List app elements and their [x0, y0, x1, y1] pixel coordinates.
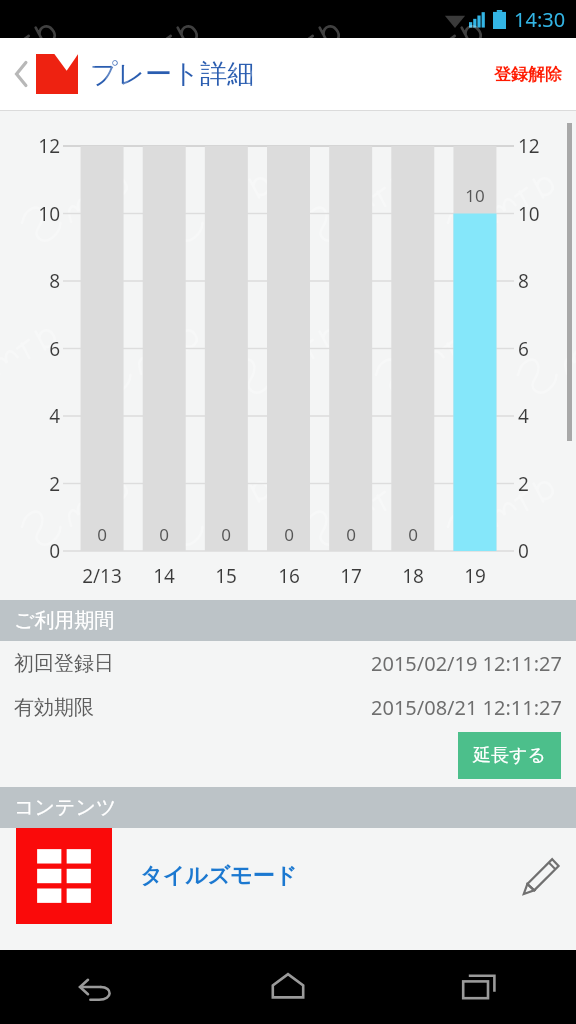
staticText: 2/13 [82, 563, 122, 589]
button[interactable]: Home [192, 950, 384, 1024]
staticText: 17 [340, 563, 362, 589]
button[interactable]: タイルズモード [0, 828, 576, 924]
staticText: 0 [159, 523, 169, 546]
staticText: 2015/08/21 12:11:27 [371, 694, 562, 721]
button[interactable]: Recents [384, 950, 576, 1024]
staticText: ご利用期間 [14, 608, 115, 633]
staticText: 4 [49, 403, 60, 429]
staticText: 0 [97, 523, 107, 546]
staticText: コンテンツ [14, 795, 117, 820]
staticText: 0 [346, 523, 356, 546]
staticText: 15 [215, 563, 237, 589]
staticText: 0 [518, 538, 529, 564]
staticText: プレート詳細 [90, 57, 254, 91]
staticText: 6 [518, 336, 529, 362]
staticText: 延長する [473, 744, 546, 767]
staticText: 14 [153, 563, 175, 589]
staticText: 4 [518, 403, 529, 429]
staticText: 2 [518, 471, 529, 497]
button[interactable]: 登録解除 [488, 54, 568, 95]
button[interactable]: Back [0, 950, 192, 1024]
staticText: 10 [38, 201, 60, 227]
staticText: 0 [49, 538, 60, 564]
button[interactable]: Back [8, 52, 34, 96]
button[interactable]: 延長する [458, 732, 561, 779]
staticText: 有効期限 [14, 695, 94, 720]
staticText: 0 [221, 523, 231, 546]
staticText: 0 [408, 523, 418, 546]
staticText: 2015/02/19 12:11:27 [371, 650, 562, 677]
staticText: 10 [465, 184, 485, 207]
button[interactable]: Edit [512, 847, 570, 905]
staticText: 16 [278, 563, 300, 589]
staticText: 12 [38, 133, 60, 159]
staticText: 登録解除 [494, 64, 562, 85]
staticText: 0 [284, 523, 294, 546]
staticText: 12 [518, 133, 540, 159]
staticText: 6 [49, 336, 60, 362]
staticText: 初回登録日 [14, 651, 114, 676]
staticText: 14:30 [514, 6, 566, 33]
staticText: 18 [402, 563, 424, 589]
staticText: 10 [518, 201, 540, 227]
staticText: 19 [464, 563, 486, 589]
staticText: タイルズモード [140, 862, 298, 890]
staticText: 8 [49, 268, 60, 294]
staticText: 8 [518, 268, 529, 294]
staticText: 2 [49, 471, 60, 497]
